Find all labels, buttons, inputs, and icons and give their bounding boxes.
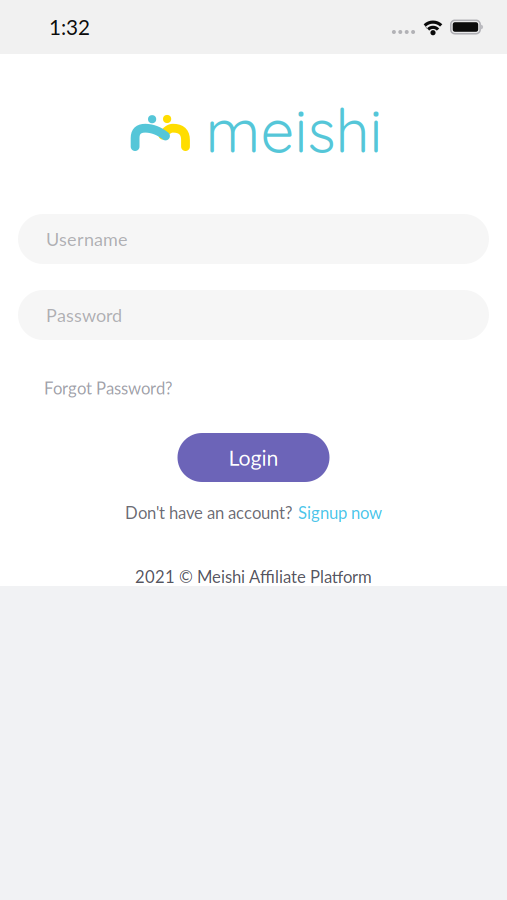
button[interactable]: Password — [18, 290, 489, 340]
staticText: Forgot Password? — [44, 378, 172, 398]
staticText: meishi — [205, 92, 382, 167]
staticText: 2021 © Meishi Affiliate Platform — [135, 566, 372, 586]
staticText: Don't have an account? — [125, 502, 292, 522]
button[interactable]: Username — [18, 214, 489, 264]
button[interactable]: Signup now — [298, 502, 382, 522]
button[interactable]: Forgot Password? — [44, 378, 172, 398]
staticText: Login — [228, 445, 278, 470]
staticText: Password — [46, 304, 122, 326]
staticText: Username — [46, 228, 128, 250]
staticText: 1:32 — [49, 15, 90, 39]
staticText: Signup now — [298, 502, 382, 522]
button[interactable]: Login — [177, 433, 329, 482]
